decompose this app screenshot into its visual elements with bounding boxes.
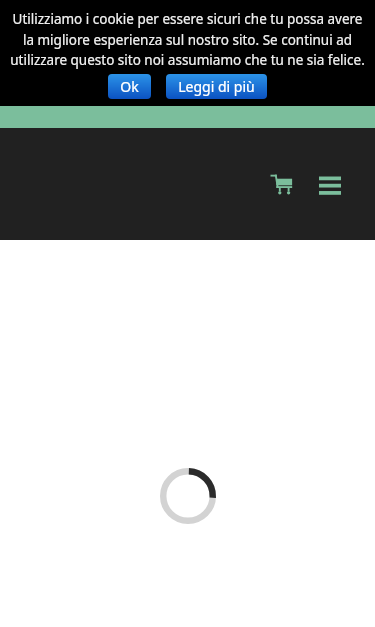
- button[interactable]: Menu: [313, 167, 347, 201]
- staticText: Leggi di più: [178, 77, 255, 96]
- button[interactable]: Leggi di più: [166, 74, 267, 99]
- staticText: Ok: [120, 77, 139, 96]
- button[interactable]: Cart: [265, 167, 299, 201]
- button[interactable]: Ok: [108, 74, 151, 99]
- staticText: Utilizziamo i cookie per essere sicuri c…: [10, 10, 365, 69]
